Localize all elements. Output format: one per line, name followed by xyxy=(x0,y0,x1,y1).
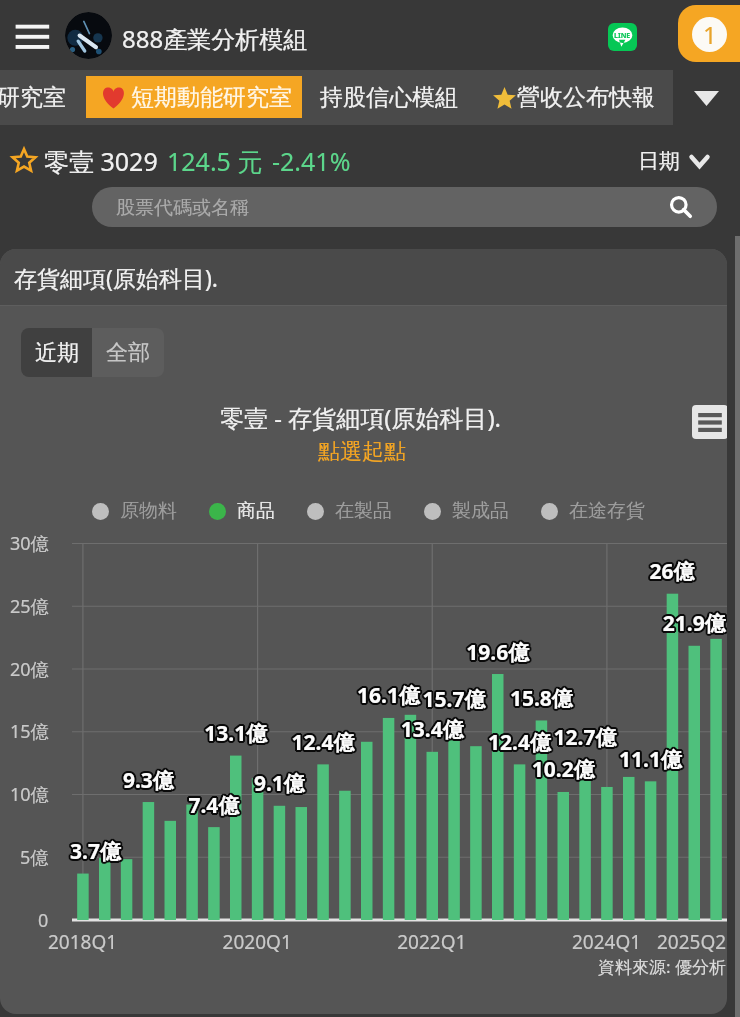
button[interactable]: 短期動能研究室 xyxy=(86,76,302,118)
staticText: LINE xyxy=(614,31,631,41)
button[interactable]: Chart menu xyxy=(692,405,727,439)
button[interactable]: 日期 xyxy=(638,148,709,174)
button[interactable]: 近期 xyxy=(21,328,92,377)
staticText: 存貨細項(原始科目). xyxy=(14,262,218,293)
button[interactable]: 持股信心模組 xyxy=(312,70,466,125)
staticText: 日期 xyxy=(638,148,680,174)
button[interactable]: More tabs xyxy=(673,70,740,125)
button[interactable]: Menu xyxy=(4,8,60,62)
button[interactable]: 製成品 xyxy=(424,499,509,523)
staticText: 研究室 xyxy=(0,83,66,112)
staticText: 股票代碼或名稱 xyxy=(116,196,249,220)
button[interactable]: 商品 xyxy=(209,499,275,523)
button[interactable]: 營收公布快報 xyxy=(489,70,664,125)
staticText: 製成品 xyxy=(452,499,509,523)
staticText: 近期 xyxy=(35,339,79,367)
button[interactable]: 在途存貨 xyxy=(541,499,645,523)
button[interactable]: LINE xyxy=(608,23,637,51)
button[interactable]: 在製品 xyxy=(307,499,392,523)
staticText: 124.5 元 xyxy=(167,144,263,178)
staticText: -2.41% xyxy=(272,144,351,178)
staticText: 全部 xyxy=(106,339,150,367)
button[interactable]: Favorite xyxy=(10,148,38,174)
staticText: 888產業分析模組 xyxy=(122,22,308,55)
staticText: 原物料 xyxy=(120,499,177,523)
staticText: 零壹 3029 xyxy=(44,144,158,178)
button[interactable]: Notifications xyxy=(678,5,740,62)
staticText: 商品 xyxy=(237,499,275,523)
staticText: 點選起點 xyxy=(318,438,406,466)
staticText: 持股信心模組 xyxy=(320,83,458,112)
button[interactable]: 股票代碼或名稱 xyxy=(92,187,717,227)
staticText: 1 xyxy=(703,18,717,51)
button[interactable]: 研究室 xyxy=(0,70,76,125)
button[interactable]: 全部 xyxy=(92,328,164,377)
staticText: 短期動能研究室 xyxy=(131,83,292,112)
button[interactable]: 原物料 xyxy=(92,499,177,523)
staticText: 在製品 xyxy=(335,499,392,523)
staticText: 零壹 - 存貨細項(原始科目). xyxy=(220,401,502,434)
staticText: 在途存貨 xyxy=(569,499,645,523)
staticText: 營收公布快報 xyxy=(517,83,655,112)
